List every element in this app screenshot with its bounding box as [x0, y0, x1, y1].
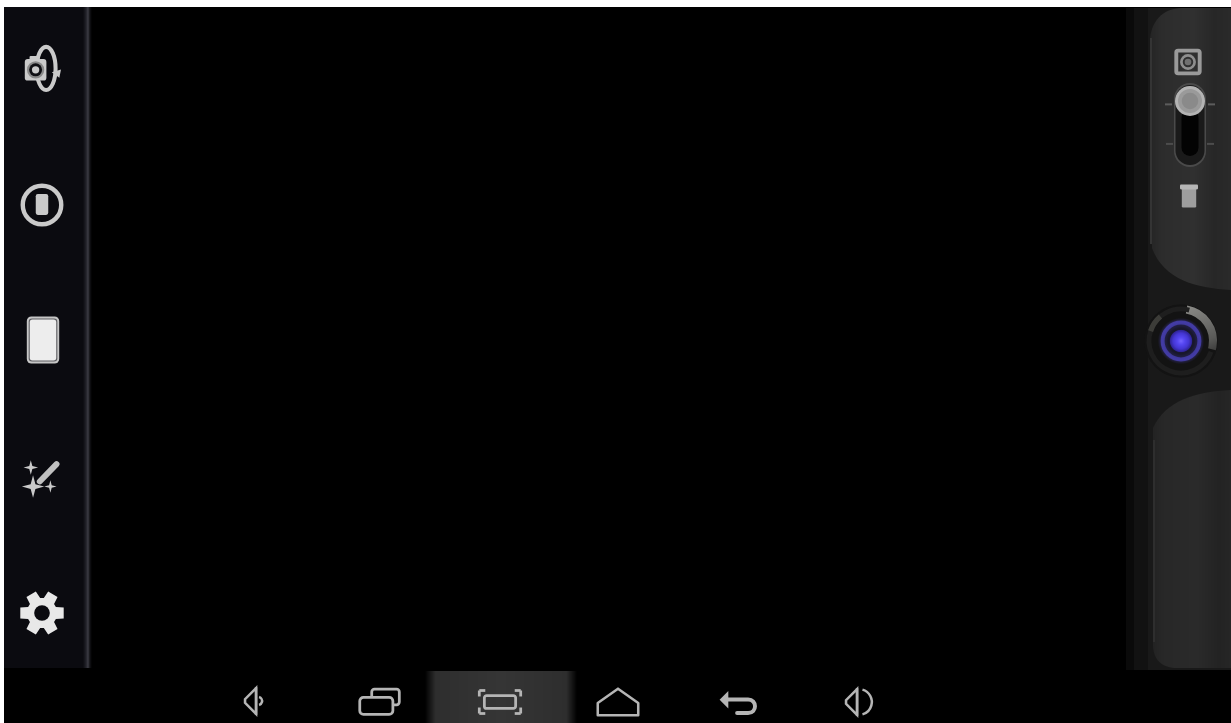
- button[interactable]: Camera / video mode switch: [1165, 82, 1215, 168]
- button[interactable]: Settings: [16, 587, 68, 639]
- button[interactable]: Screenshot: [425, 668, 577, 723]
- button[interactable]: Back: [715, 679, 761, 723]
- button[interactable]: Shutter: [1141, 301, 1221, 381]
- button[interactable]: Exposure: [16, 179, 68, 231]
- button[interactable]: Recent apps: [357, 679, 403, 723]
- button[interactable]: Effects: [14, 449, 70, 505]
- button[interactable]: Camera mode: [1173, 47, 1203, 77]
- button[interactable]: Home: [595, 679, 641, 723]
- button[interactable]: Switch camera: [14, 42, 68, 96]
- button[interactable]: Screenshot: [477, 679, 523, 723]
- button[interactable]: Volume down: [234, 678, 280, 723]
- button[interactable]: Video mode: [1174, 181, 1204, 211]
- button[interactable]: Volume up: [835, 679, 881, 723]
- button[interactable]: White balance: [16, 313, 70, 367]
